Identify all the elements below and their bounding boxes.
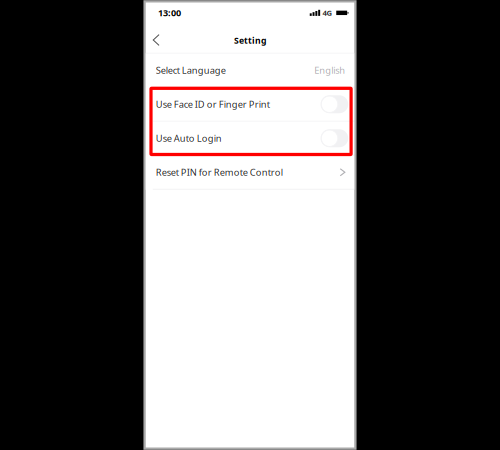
staticText: Reset PIN for Remote Control [156, 166, 283, 179]
staticText: Setting [234, 34, 266, 46]
staticText: Select Language [156, 64, 226, 77]
button[interactable]: Reset PIN for Remote Control [146, 156, 354, 189]
button[interactable]: Back [148, 23, 164, 53]
staticText: Use Face ID or Finger Print [156, 98, 270, 111]
button[interactable]: Use Face ID or Finger Print [146, 88, 354, 121]
button[interactable]: Select Language [146, 54, 354, 87]
staticText: English [314, 64, 345, 77]
staticText: 4G [322, 8, 332, 18]
staticText: Use Auto Login [156, 132, 222, 145]
staticText: 13:00 [158, 7, 181, 19]
button[interactable]: Use Auto Login [146, 122, 354, 155]
